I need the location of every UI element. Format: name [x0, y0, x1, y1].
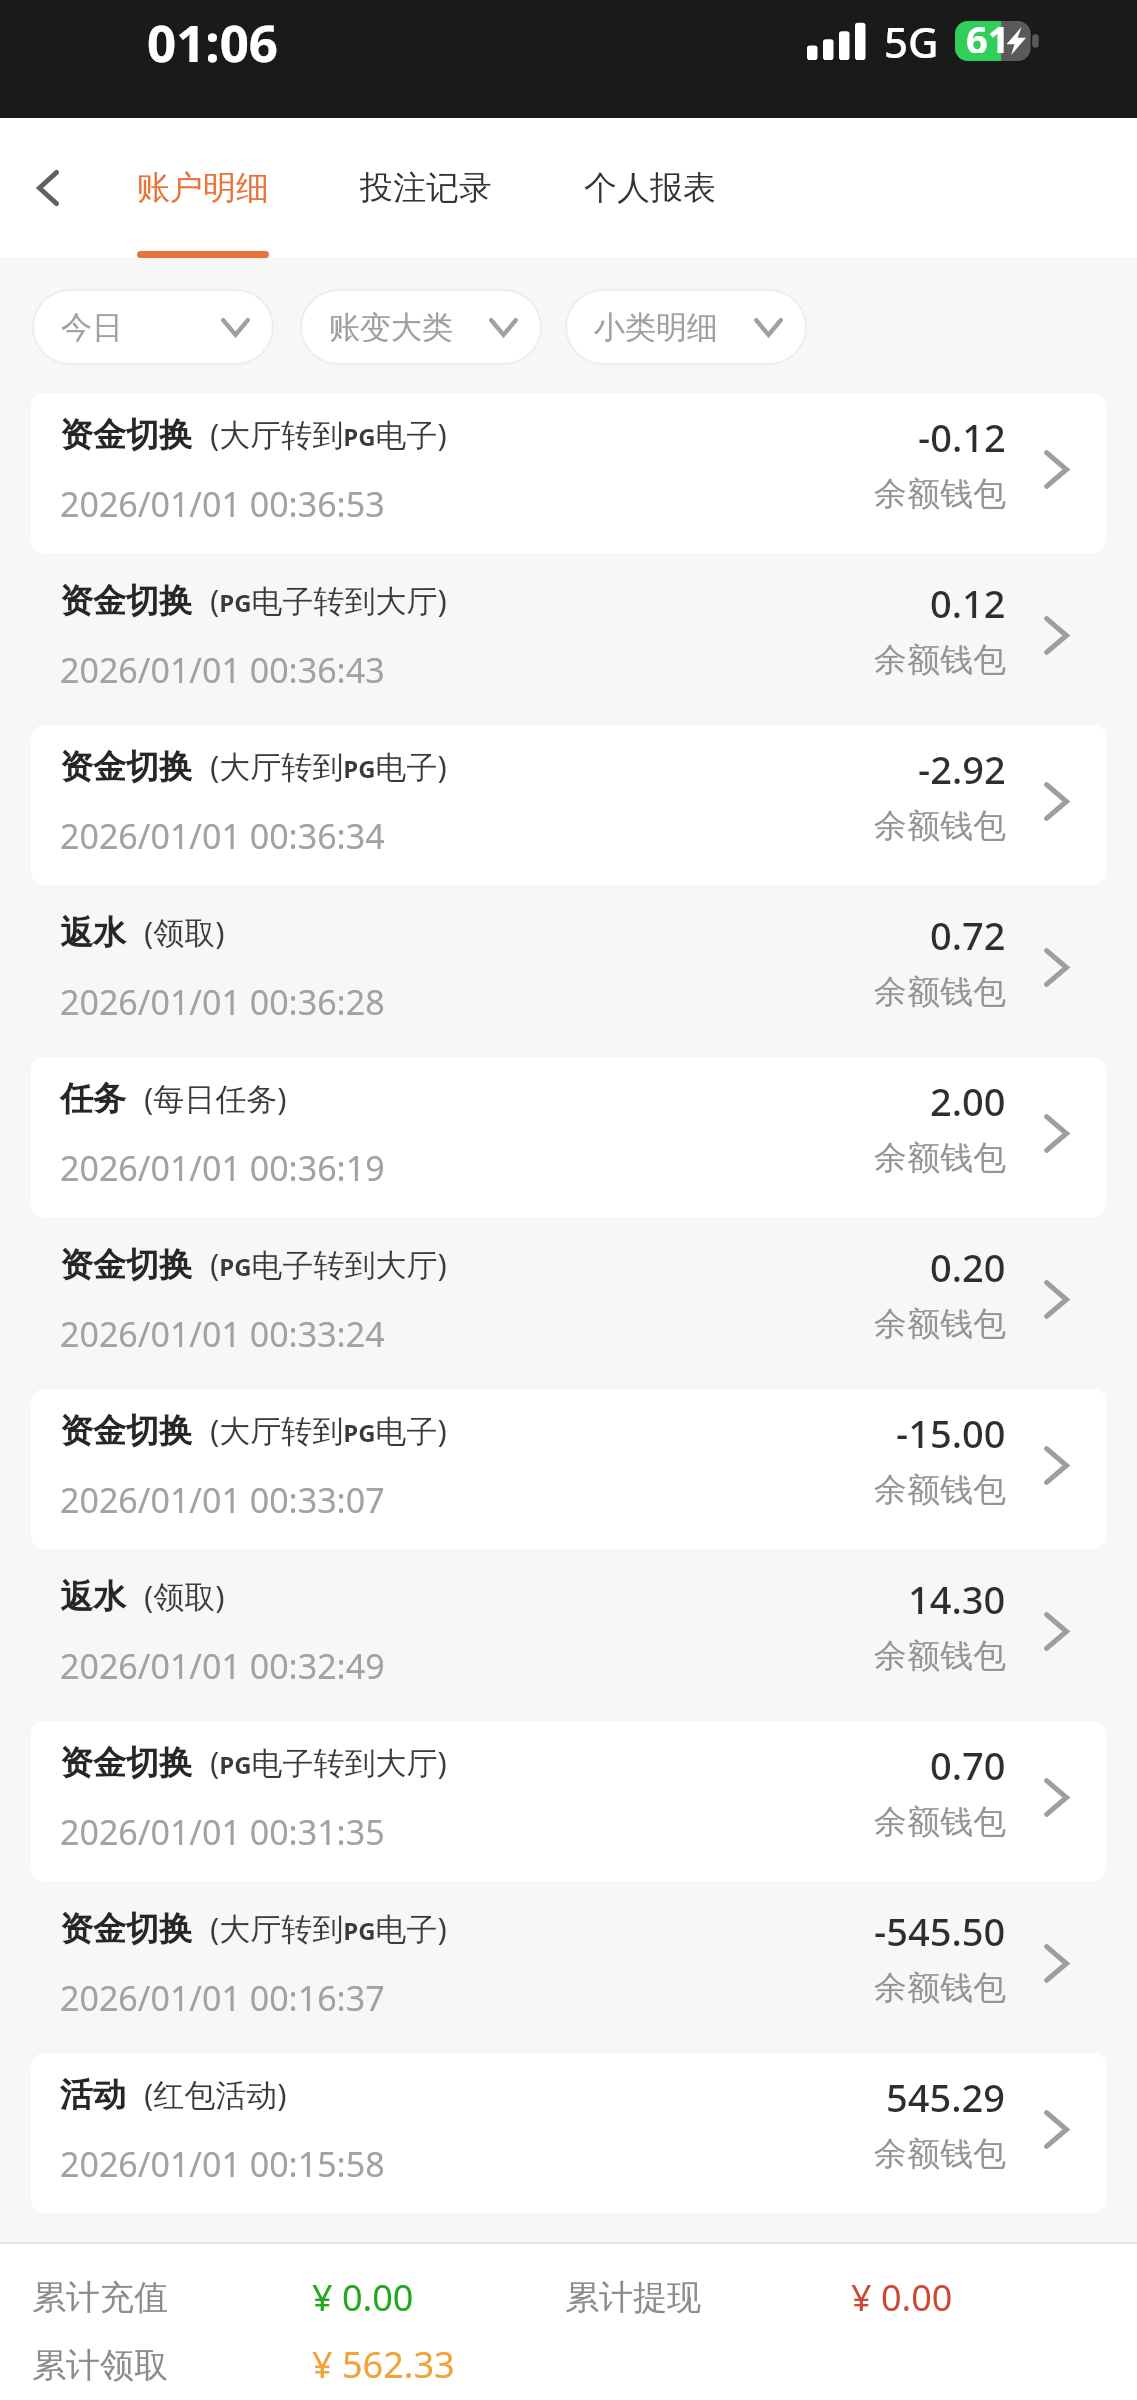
staticText: -0.12: [918, 411, 1006, 463]
button[interactable]: 活动: [31, 2053, 1106, 2213]
button[interactable]: 账变大类: [302, 291, 540, 363]
staticText: 余额钱包: [874, 1967, 1006, 2009]
staticText: 累计领取: [32, 2344, 168, 2387]
button[interactable]: 任务: [31, 1057, 1106, 1217]
staticText: 累计充值: [32, 2276, 168, 2319]
button[interactable]: 账户明细: [137, 118, 297, 257]
staticText: 14.30: [908, 1573, 1006, 1625]
staticText: 余额钱包: [874, 971, 1006, 1013]
staticText: (领取): [144, 1575, 225, 1617]
staticText: 账户明细: [137, 167, 269, 209]
staticText: 545.29: [886, 2071, 1006, 2123]
staticText: 资金切换: [60, 746, 192, 788]
staticText: 累计提现: [565, 2276, 701, 2319]
button[interactable]: 资金切换: [31, 1887, 1106, 2047]
staticText: (PG电子转到大厅): [210, 579, 447, 621]
staticText: 0.12: [930, 577, 1006, 629]
staticText: 2026/01/01 00:32:49: [60, 1643, 385, 1689]
staticText: 0.70: [930, 1739, 1006, 1791]
button[interactable]: 小类明细: [567, 291, 805, 363]
staticText: 2026/01/01 00:36:19: [60, 1145, 385, 1191]
staticText: 资金切换: [60, 580, 192, 622]
staticText: 返水: [60, 1576, 126, 1618]
button[interactable]: 返水: [31, 891, 1106, 1051]
staticText: ¥ 562.33: [312, 2340, 455, 2389]
staticText: 2026/01/01 00:15:58: [60, 2141, 385, 2187]
staticText: 活动: [60, 2074, 126, 2116]
staticText: 余额钱包: [874, 1635, 1006, 1677]
button[interactable]: 今日: [34, 291, 272, 363]
staticText: 2026/01/01 00:36:28: [60, 979, 385, 1025]
staticText: 资金切换: [60, 1908, 192, 1950]
staticText: -545.50: [874, 1905, 1006, 1957]
button[interactable]: 资金切换: [31, 1389, 1106, 1549]
staticText: (大厅转到PG电子): [210, 413, 447, 455]
button[interactable]: 资金切换: [31, 393, 1106, 553]
staticText: 资金切换: [60, 1410, 192, 1452]
button[interactable]: 资金切换: [31, 725, 1106, 885]
staticText: 投注记录: [360, 167, 492, 209]
staticText: 余额钱包: [874, 1469, 1006, 1511]
staticText: 61: [966, 13, 1010, 53]
staticText: (PG电子转到大厅): [210, 1243, 447, 1285]
staticText: (大厅转到PG电子): [210, 1409, 447, 1451]
staticText: 2026/01/01 00:36:53: [60, 481, 385, 527]
staticText: 余额钱包: [874, 2133, 1006, 2175]
button[interactable]: 返水: [31, 1555, 1106, 1715]
staticText: (红包活动): [144, 2073, 287, 2115]
button[interactable]: 资金切换: [31, 1721, 1106, 1881]
staticText: 资金切换: [60, 1742, 192, 1784]
staticText: 余额钱包: [874, 1801, 1006, 1843]
staticText: -15.00: [896, 1407, 1006, 1459]
button[interactable]: 资金切换: [31, 559, 1106, 719]
staticText: 2.00: [930, 1075, 1006, 1127]
staticText: 任务: [60, 1078, 126, 1120]
staticText: 余额钱包: [874, 1137, 1006, 1179]
staticText: 返水: [60, 912, 126, 954]
button[interactable]: 资金切换: [31, 1223, 1106, 1383]
staticText: 0.20: [930, 1241, 1006, 1293]
staticText: 余额钱包: [874, 473, 1006, 515]
button[interactable]: 投注记录: [360, 118, 520, 257]
staticText: 资金切换: [60, 1244, 192, 1286]
staticText: 今日: [61, 308, 123, 347]
staticText: 个人报表: [584, 167, 716, 209]
staticText: -2.92: [918, 743, 1006, 795]
staticText: 余额钱包: [874, 805, 1006, 847]
staticText: 2026/01/01 00:16:37: [60, 1975, 385, 2021]
button[interactable]: Back: [9, 149, 87, 227]
staticText: 01:06: [147, 7, 279, 76]
staticText: 5G: [884, 13, 939, 70]
staticText: ¥ 0.00: [312, 2273, 414, 2322]
staticText: 账变大类: [329, 308, 453, 347]
staticText: (PG电子转到大厅): [210, 1741, 447, 1783]
staticText: 2026/01/01 00:36:43: [60, 647, 385, 693]
staticText: (大厅转到PG电子): [210, 1907, 447, 1949]
staticText: 资金切换: [60, 414, 192, 456]
staticText: 2026/01/01 00:33:07: [60, 1477, 385, 1523]
staticText: 2026/01/01 00:36:34: [60, 813, 385, 859]
staticText: 0.72: [930, 909, 1006, 961]
staticText: (大厅转到PG电子): [210, 745, 447, 787]
staticText: ¥ 0.00: [851, 2273, 953, 2322]
staticText: (领取): [144, 911, 225, 953]
staticText: (每日任务): [144, 1077, 287, 1119]
staticText: 小类明细: [594, 308, 718, 347]
staticText: 2026/01/01 00:33:24: [60, 1311, 385, 1357]
staticText: 2026/01/01 00:31:35: [60, 1809, 385, 1855]
staticText: 余额钱包: [874, 639, 1006, 681]
button[interactable]: 个人报表: [584, 118, 744, 257]
staticText: 余额钱包: [874, 1303, 1006, 1345]
